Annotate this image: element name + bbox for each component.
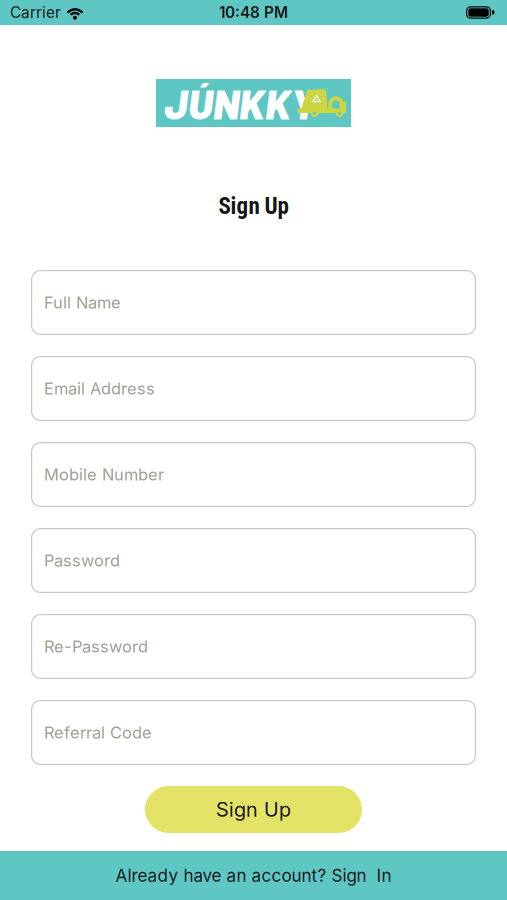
staticText: Already have an account? Sign In [115,865,391,886]
staticText: Sign Up [216,797,291,822]
staticText: Referral Code [44,723,152,742]
textField[interactable]: Mobile Number [44,465,476,484]
staticText: Full Name [44,293,121,312]
textField[interactable]: Email Address [44,379,476,398]
staticText: JÚNKKY [164,78,317,128]
staticText: Mobile Number [44,465,164,484]
button[interactable]: Sign Up [145,786,362,833]
staticText: Re-Password [44,637,148,656]
textField[interactable]: Referral Code [44,723,476,742]
textField[interactable]: Password [44,551,476,570]
staticText: 10:48 PM [219,3,288,22]
staticText: Carrier [10,3,61,22]
staticText: Password [44,551,120,570]
staticText: Sign Up [218,192,288,219]
textField[interactable]: Full Name [44,293,476,312]
staticText: Email Address [44,379,155,398]
textField[interactable]: Re-Password [44,637,476,656]
button[interactable]: Already have an account? Sign In [0,851,507,900]
